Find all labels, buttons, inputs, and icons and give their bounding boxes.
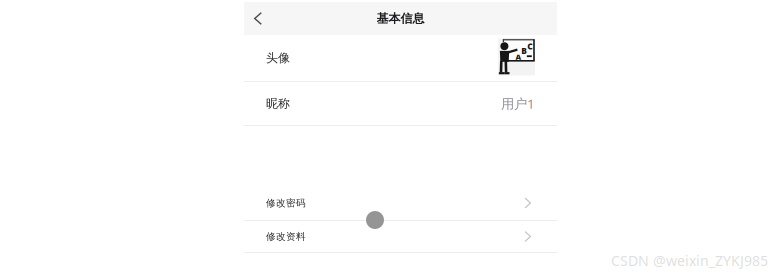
button[interactable]: 修改资料 — [244, 221, 557, 252]
staticText: 用户1 — [501, 94, 535, 113]
staticText: A — [516, 52, 522, 62]
button[interactable]: 修改密码 — [244, 186, 557, 220]
staticText: 昵称 — [266, 96, 290, 111]
staticText: C — [527, 40, 533, 52]
staticText: CSDN @weixin_ZYKJ985 — [611, 251, 768, 270]
staticText: 修改资料 — [266, 230, 306, 243]
staticText: 修改密码 — [266, 197, 306, 209]
button[interactable]: Back — [244, 2, 272, 35]
button[interactable]: 昵称 — [244, 82, 557, 125]
staticText: 头像 — [266, 50, 290, 65]
button[interactable]: 头像 — [244, 35, 557, 81]
staticText: B — [521, 45, 527, 56]
staticText: 基本信息 — [376, 11, 424, 26]
